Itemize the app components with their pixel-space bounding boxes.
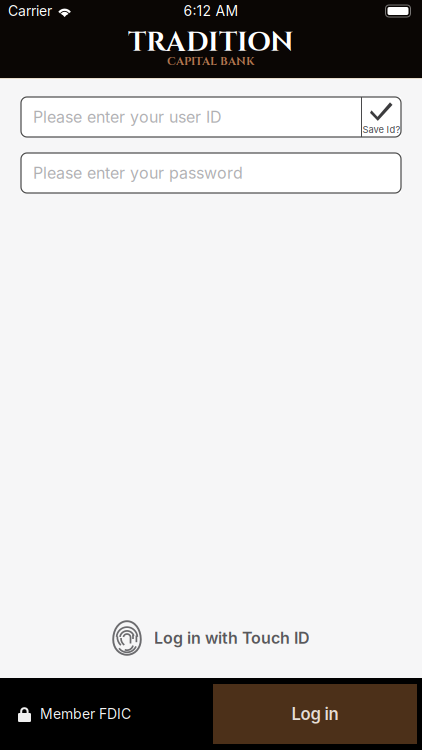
staticText: TRADITION	[128, 24, 294, 61]
button[interactable]: Log in with Touch ID	[0, 619, 422, 657]
staticText: Member FDIC	[40, 705, 131, 722]
button[interactable]: Please enter your user ID	[21, 97, 361, 137]
staticText: Log in with Touch ID	[154, 628, 310, 648]
button[interactable]: Save Id?	[362, 97, 401, 137]
staticText: Carrier	[8, 2, 52, 19]
button[interactable]: Please enter your password	[21, 153, 401, 193]
button[interactable]: Log in	[213, 684, 417, 744]
staticText: CAPITAL BANK	[167, 54, 255, 69]
staticText: 6:12 AM	[183, 2, 238, 19]
staticText: Please enter your user ID	[33, 107, 222, 127]
staticText: Save Id?	[362, 124, 400, 135]
staticText: Log in	[291, 704, 338, 724]
staticText: Please enter your password	[33, 163, 243, 183]
